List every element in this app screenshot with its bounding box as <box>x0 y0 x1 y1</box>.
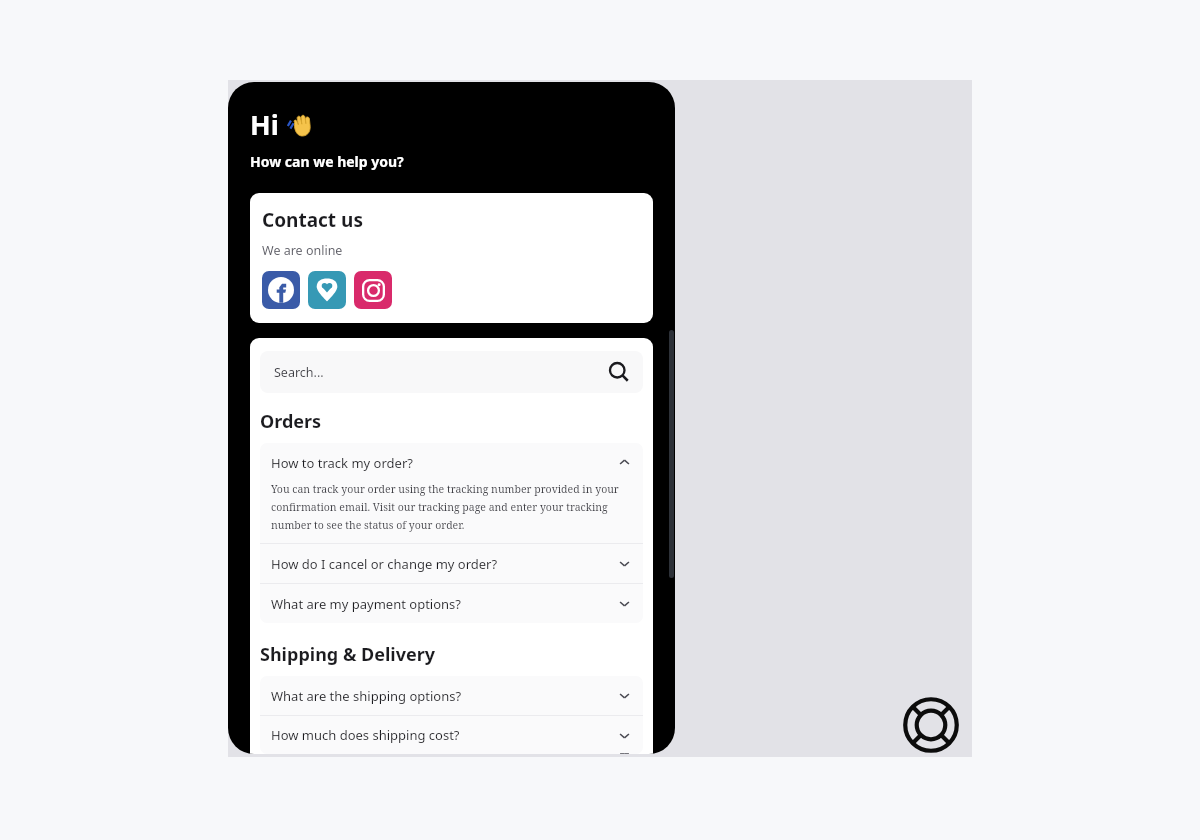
staticText: How to track my order? <box>271 454 618 472</box>
staticText: Shipping & Delivery <box>260 642 436 667</box>
button[interactable]: Search... <box>260 351 643 393</box>
staticText: Hi <box>250 106 286 143</box>
staticText: Orders <box>260 409 322 434</box>
staticText: You can track your order using the track… <box>271 482 623 532</box>
staticText: Search... <box>274 364 324 381</box>
button[interactable]: What are the shipping options? <box>260 676 643 715</box>
button[interactable]: Location <box>308 271 346 309</box>
button[interactable]: Open support widget <box>901 695 961 755</box>
button[interactable]: Facebook <box>262 271 300 309</box>
staticText: Contact us <box>262 207 363 233</box>
button[interactable]: What are my payment options? <box>260 584 643 623</box>
staticText: How can we help you? <box>250 152 404 171</box>
button[interactable]: How do I cancel or change my order? <box>260 544 643 583</box>
button[interactable]: How much does shipping cost? <box>260 716 643 754</box>
staticText: We are online <box>262 242 343 259</box>
button[interactable]: How to track my order? <box>260 443 643 482</box>
staticText: How do I cancel or change my order? <box>271 555 618 573</box>
staticText: How much does shipping cost? <box>271 726 618 744</box>
button[interactable]: Instagram <box>354 271 392 309</box>
staticText: What are my payment options? <box>271 595 618 613</box>
staticText: What are the shipping options? <box>271 687 618 705</box>
